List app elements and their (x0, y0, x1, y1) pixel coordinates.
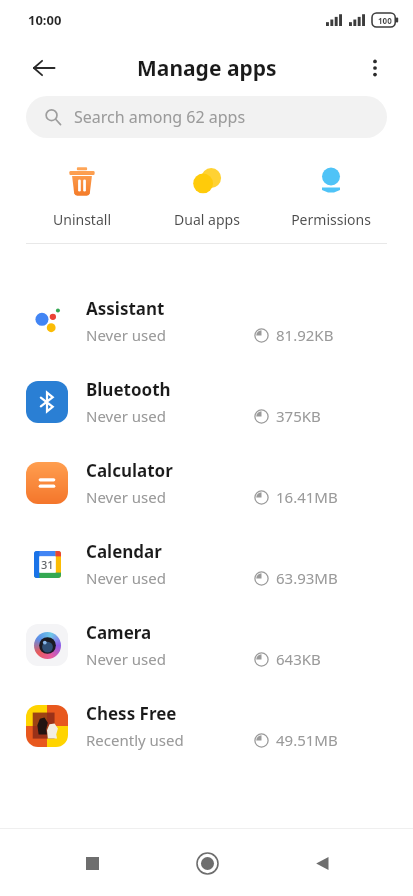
button[interactable]: 31 (0, 523, 413, 604)
staticText: Bluetooth (86, 378, 171, 401)
staticText: Never used (86, 568, 166, 588)
staticText: 81.92KB (276, 325, 334, 345)
button[interactable]: Dual apps (152, 160, 262, 233)
button[interactable]: Assistant (0, 280, 413, 361)
button[interactable]: Chess Free (0, 685, 413, 766)
staticText: 49.51MB (276, 730, 338, 750)
staticText: 63.93MB (276, 568, 338, 588)
staticText: Manage apps (137, 54, 277, 83)
button[interactable]: More options (353, 46, 397, 90)
button[interactable]: Back (22, 46, 66, 90)
staticText: Never used (86, 325, 166, 345)
staticText: Recently used (86, 730, 184, 750)
button[interactable]: Bluetooth (0, 361, 413, 442)
staticText: Camera (86, 621, 152, 644)
staticText: 10:00 (28, 11, 62, 29)
button[interactable]: Back (298, 839, 346, 887)
staticText: Dual apps (174, 210, 240, 229)
staticText: 643KB (276, 649, 321, 669)
button[interactable]: Permissions (276, 160, 386, 233)
staticText: Permissions (291, 210, 371, 229)
button[interactable]: Camera (0, 604, 413, 685)
staticText: Assistant (86, 297, 165, 320)
staticText: Never used (86, 649, 166, 669)
staticText: Never used (86, 487, 166, 507)
staticText: Never used (86, 406, 166, 426)
button[interactable]: Calculator (0, 442, 413, 523)
staticText: Uninstall (53, 210, 111, 229)
staticText: Calculator (86, 459, 173, 482)
staticText: 31 (41, 557, 54, 572)
staticText: 16.41MB (276, 487, 338, 507)
staticText: 375KB (276, 406, 321, 426)
staticText: Chess Free (86, 702, 177, 725)
staticText: 100 (378, 15, 392, 26)
button[interactable]: Uninstall (27, 160, 137, 233)
button[interactable]: Home (183, 839, 231, 887)
button[interactable]: Recent apps (68, 839, 116, 887)
staticText: Search among 62 apps (74, 106, 246, 128)
staticText: Calendar (86, 540, 162, 563)
button[interactable]: Search among 62 apps (26, 96, 387, 138)
